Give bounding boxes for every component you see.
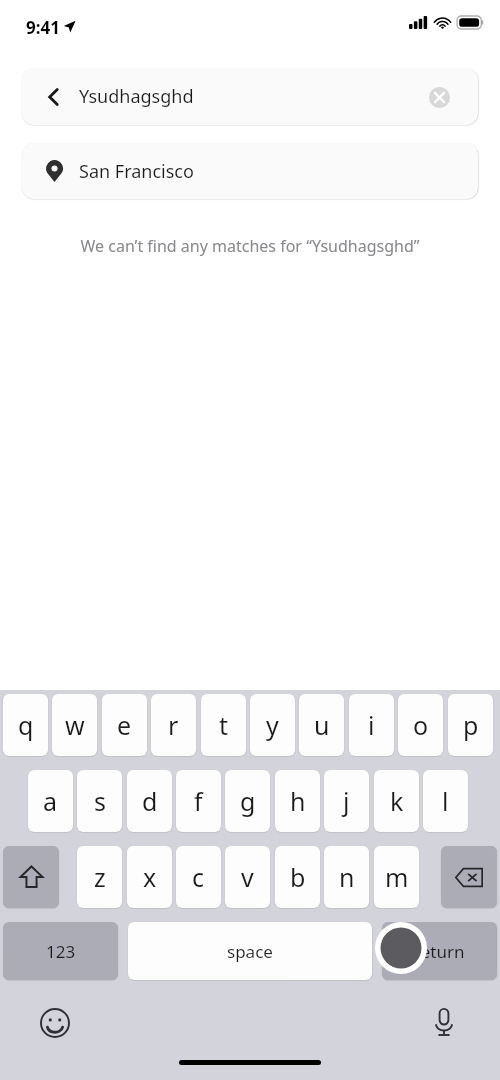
button[interactable]: s: [77, 770, 122, 832]
staticText: a: [43, 784, 58, 818]
button[interactable]: return: [382, 922, 497, 980]
staticText: s: [94, 784, 106, 818]
staticText: return: [414, 940, 465, 963]
staticText: k: [390, 784, 404, 818]
staticText: o: [413, 708, 429, 742]
button[interactable]: o: [398, 694, 443, 756]
button[interactable]: q: [3, 694, 48, 756]
button[interactable]: m: [374, 846, 419, 908]
button[interactable]: b: [275, 846, 320, 908]
staticText: i: [368, 708, 375, 742]
staticText: space: [227, 940, 273, 963]
button[interactable]: u: [299, 694, 344, 756]
button[interactable]: Backspace: [441, 846, 497, 908]
button[interactable]: d: [127, 770, 172, 832]
button[interactable]: c: [176, 846, 221, 908]
button[interactable]: Clear text: [420, 78, 458, 116]
staticText: t: [219, 708, 229, 742]
button[interactable]: x: [127, 846, 172, 908]
staticText: h: [290, 784, 306, 818]
staticText: 123: [46, 940, 76, 963]
staticText: j: [343, 784, 350, 818]
staticText: q: [18, 708, 34, 742]
button[interactable]: Back: [22, 68, 478, 125]
staticText: u: [314, 708, 330, 742]
staticText: e: [117, 708, 132, 742]
button[interactable]: w: [52, 694, 97, 756]
button[interactable]: j: [324, 770, 369, 832]
button[interactable]: f: [176, 770, 221, 832]
button[interactable]: z: [77, 846, 122, 908]
button[interactable]: n: [324, 846, 369, 908]
staticText: We can’t find any matches for “Ysudhagsg…: [80, 235, 420, 257]
staticText: w: [65, 708, 85, 742]
staticText: z: [94, 860, 106, 894]
button[interactable]: 123: [3, 922, 118, 980]
button[interactable]: space: [128, 922, 372, 980]
button[interactable]: e: [102, 694, 147, 756]
button[interactable]: y: [250, 694, 295, 756]
staticText: c: [192, 860, 205, 894]
button[interactable]: t: [201, 694, 246, 756]
button[interactable]: a: [28, 770, 73, 832]
staticText: m: [385, 860, 409, 894]
button[interactable]: San Francisco: [22, 143, 478, 199]
staticText: f: [194, 784, 203, 818]
staticText: 9:41: [26, 16, 60, 39]
button[interactable]: p: [448, 694, 493, 756]
staticText: p: [463, 708, 479, 742]
staticText: y: [266, 708, 279, 742]
button[interactable]: Back: [32, 75, 76, 119]
staticText: San Francisco: [79, 159, 194, 184]
button[interactable]: i: [349, 694, 394, 756]
button[interactable]: Shift: [3, 846, 59, 908]
button[interactable]: l: [423, 770, 468, 832]
button[interactable]: v: [225, 846, 270, 908]
staticText: r: [168, 708, 179, 742]
staticText: g: [240, 784, 256, 818]
button[interactable]: Emoji: [32, 1000, 78, 1046]
staticText: x: [143, 860, 157, 894]
staticText: d: [142, 784, 158, 818]
staticText: l: [442, 784, 449, 818]
staticText: v: [241, 860, 254, 894]
staticText: n: [339, 860, 355, 894]
staticText: Ysudhagsghd: [79, 84, 194, 109]
button[interactable]: k: [374, 770, 419, 832]
button[interactable]: h: [275, 770, 320, 832]
staticText: b: [290, 860, 306, 894]
button[interactable]: r: [151, 694, 196, 756]
button[interactable]: g: [225, 770, 270, 832]
button[interactable]: Voice input: [421, 1000, 467, 1046]
